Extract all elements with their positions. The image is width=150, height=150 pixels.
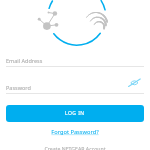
button[interactable]: Forgot Password? [51,128,99,136]
button[interactable]: Create NETGEAR Account [44,145,106,150]
staticText: LOG IN [65,110,85,117]
button[interactable]: Password [0,79,150,94]
button[interactable]: Show password [127,75,143,91]
staticText: Email Address [6,57,43,64]
staticText: Password [6,84,31,91]
button[interactable]: LOG IN [6,105,144,122]
button[interactable]: Email Address [0,52,150,67]
